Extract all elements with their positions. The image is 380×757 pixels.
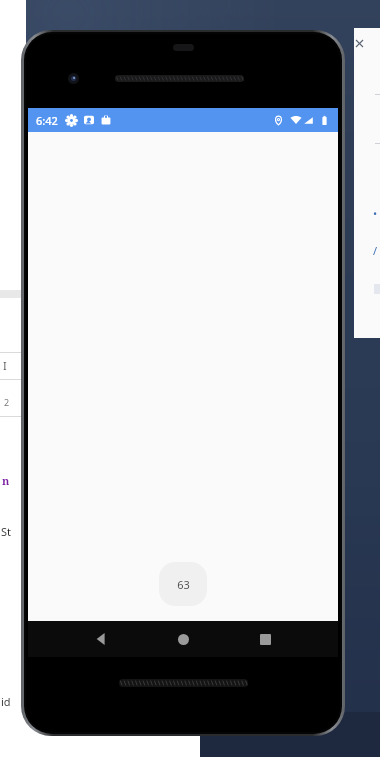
button[interactable]: 63 [159,562,207,606]
button[interactable]: Close [356,40,363,47]
staticText: 6:42 [36,113,58,128]
staticText: n [2,473,10,488]
staticText: 63 [177,577,190,592]
staticText: / [373,243,378,258]
staticText: I [3,359,7,373]
button[interactable]: Recent apps [247,621,283,657]
button[interactable]: Home [165,621,201,657]
staticText: id [1,694,11,709]
staticText: 2 [4,396,10,408]
staticText: St [1,524,12,539]
button[interactable]: Back [83,621,119,657]
staticText: • [373,206,378,221]
